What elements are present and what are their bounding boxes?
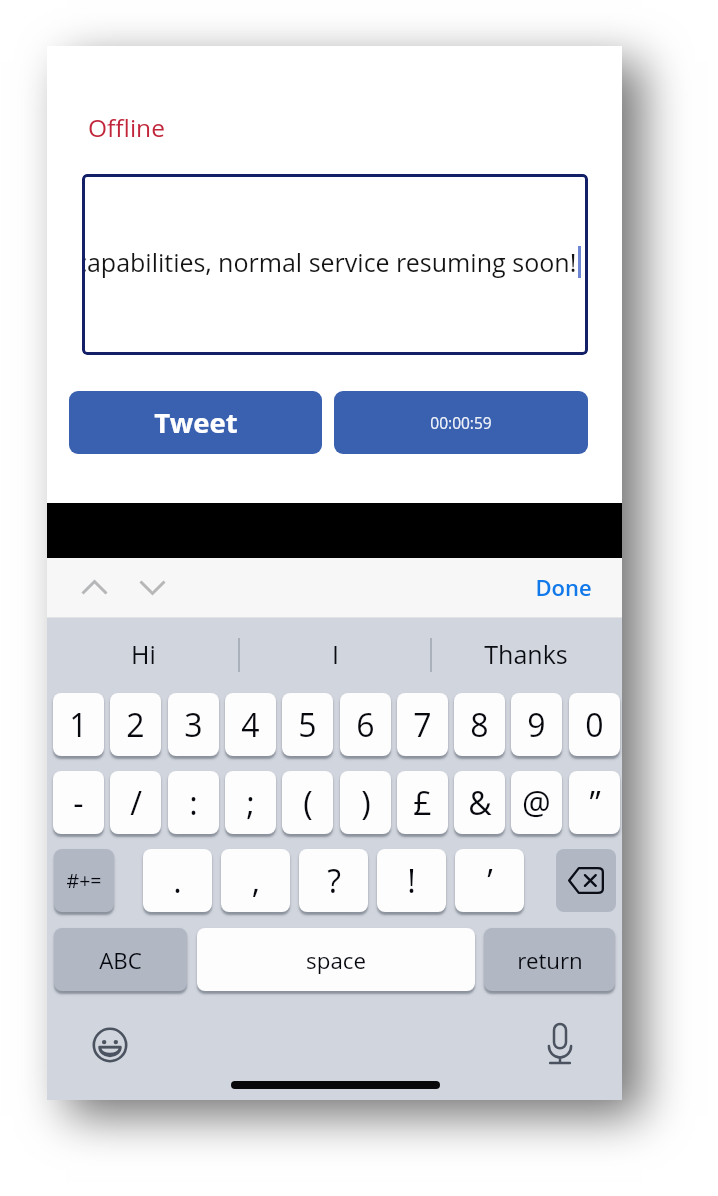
button[interactable]: 7 bbox=[397, 693, 448, 756]
button[interactable]: space bbox=[197, 928, 475, 991]
staticText: Offline bbox=[88, 111, 165, 144]
staticText: #+= bbox=[66, 867, 102, 894]
staticText: 2 bbox=[126, 703, 145, 747]
staticText: 4 bbox=[241, 703, 260, 747]
button[interactable]: Thanks bbox=[430, 618, 622, 690]
staticText: 0 bbox=[585, 703, 604, 747]
staticText: ( bbox=[303, 781, 313, 825]
button[interactable]: capabilities, normal service resuming so… bbox=[82, 174, 588, 355]
button[interactable]: #+= bbox=[54, 849, 114, 912]
staticText: Tweet bbox=[154, 404, 238, 441]
button[interactable]: Backspace bbox=[556, 849, 616, 912]
button[interactable]: ! bbox=[377, 849, 446, 912]
button[interactable]: Previous field bbox=[73, 566, 115, 608]
staticText: : bbox=[189, 781, 198, 825]
staticText: £ bbox=[413, 781, 432, 825]
button[interactable]: Next field bbox=[131, 566, 173, 608]
button[interactable]: 9 bbox=[511, 693, 562, 756]
button[interactable]: / bbox=[110, 771, 161, 834]
staticText: 3 bbox=[184, 703, 203, 747]
button[interactable]: 00:00:59 bbox=[334, 391, 588, 454]
staticText: . bbox=[173, 859, 182, 903]
staticText: 1 bbox=[69, 703, 88, 747]
button[interactable]: : bbox=[168, 771, 219, 834]
button[interactable]: ; bbox=[225, 771, 276, 834]
button[interactable]: £ bbox=[397, 771, 448, 834]
button[interactable]: 5 bbox=[282, 693, 333, 756]
staticText: ; bbox=[246, 781, 255, 825]
button[interactable]: return bbox=[484, 928, 615, 991]
button[interactable]: & bbox=[454, 771, 505, 834]
staticText: 9 bbox=[527, 703, 546, 747]
staticText: ABC bbox=[99, 945, 142, 975]
staticText: 5 bbox=[298, 703, 317, 747]
staticText: & bbox=[468, 781, 492, 825]
staticText: ) bbox=[361, 781, 371, 825]
button[interactable]: I bbox=[239, 618, 431, 690]
button[interactable]: ( bbox=[282, 771, 333, 834]
button[interactable]: ” bbox=[569, 771, 620, 834]
staticText: Hi bbox=[131, 637, 156, 671]
button[interactable]: . bbox=[143, 849, 212, 912]
staticText: , bbox=[252, 859, 260, 903]
button[interactable]: 6 bbox=[340, 693, 391, 756]
staticText: - bbox=[73, 781, 84, 825]
staticText: Thanks bbox=[484, 637, 568, 671]
staticText: ! bbox=[407, 859, 416, 903]
staticText: 8 bbox=[470, 703, 489, 747]
button[interactable]: ’ bbox=[455, 849, 524, 912]
staticText: capabilities, normal service resuming so… bbox=[82, 245, 577, 279]
button[interactable]: 1 bbox=[53, 693, 104, 756]
staticText: 00:00:59 bbox=[430, 412, 492, 433]
staticText: ? bbox=[327, 859, 341, 903]
button[interactable]: Done bbox=[528, 563, 598, 611]
button[interactable]: 4 bbox=[225, 693, 276, 756]
staticText: 6 bbox=[356, 703, 375, 747]
button[interactable]: , bbox=[221, 849, 290, 912]
button[interactable]: 3 bbox=[168, 693, 219, 756]
button[interactable]: ? bbox=[299, 849, 368, 912]
staticText: I bbox=[332, 637, 339, 671]
button[interactable]: Dictation bbox=[542, 1022, 578, 1066]
button[interactable]: ) bbox=[340, 771, 391, 834]
staticText: space bbox=[306, 945, 366, 975]
staticText: ’ bbox=[487, 859, 493, 903]
button[interactable]: 2 bbox=[110, 693, 161, 756]
button[interactable]: @ bbox=[511, 771, 562, 834]
button[interactable]: 8 bbox=[454, 693, 505, 756]
button[interactable]: Emoji keyboard bbox=[92, 1027, 128, 1063]
staticText: 7 bbox=[413, 703, 432, 747]
staticText: Done bbox=[535, 572, 592, 602]
button[interactable]: ABC bbox=[54, 928, 187, 991]
button[interactable]: Hi bbox=[47, 618, 239, 690]
staticText: return bbox=[517, 945, 583, 975]
button[interactable]: - bbox=[53, 771, 104, 834]
staticText: @ bbox=[522, 781, 551, 825]
staticText: / bbox=[130, 781, 142, 825]
staticText: ” bbox=[589, 781, 601, 825]
button[interactable]: 0 bbox=[569, 693, 620, 756]
button[interactable]: Tweet bbox=[69, 391, 322, 454]
